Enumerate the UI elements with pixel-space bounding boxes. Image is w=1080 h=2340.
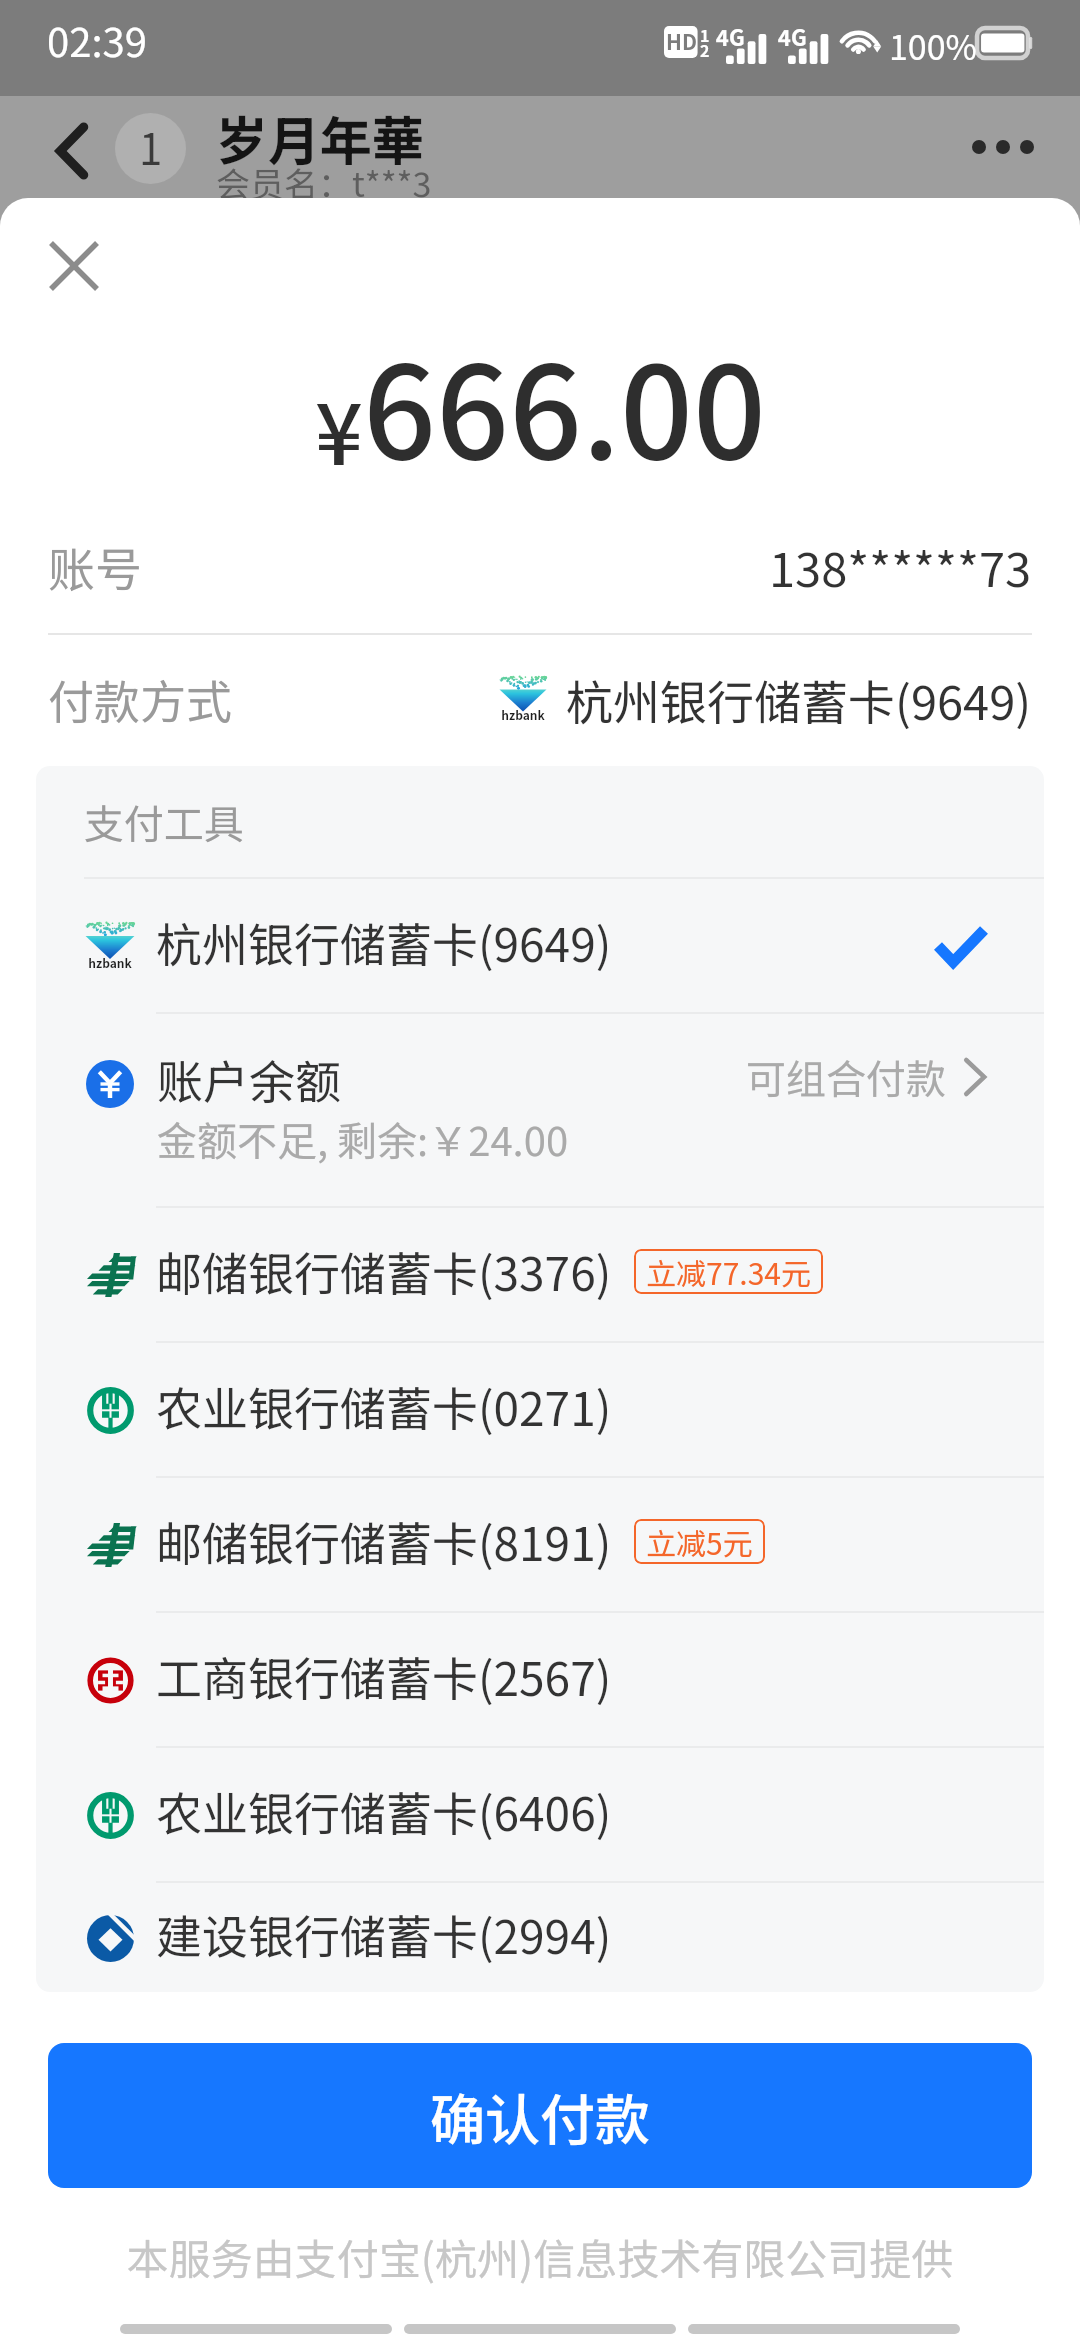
button[interactable]: Navigation 2 [688, 2324, 960, 2334]
staticText: 邮储银行储蓄卡(8191) [156, 1508, 612, 1575]
staticText: HD [666, 26, 697, 56]
staticText: 会员名：t***3 [216, 158, 432, 207]
staticText: ¥ [315, 368, 363, 490]
staticText: 金额不足, 剩余:￥24.00 [157, 1110, 569, 1168]
staticText: 立减5元 [646, 1520, 753, 1563]
staticText: 付款方式 [48, 666, 232, 733]
staticText: 杭州银行储蓄卡(9649) [156, 909, 612, 976]
staticText: 建设银行储蓄卡(2994) [156, 1901, 612, 1968]
button[interactable]: Close [16, 208, 132, 324]
button[interactable]: Navigation 1 [404, 2324, 676, 2334]
button[interactable]: 农业银行储蓄卡(6406) [84, 1748, 984, 1881]
button[interactable]: 付款方式 [48, 635, 1032, 763]
staticText: 4G [716, 20, 745, 52]
button[interactable]: 确认付款 [48, 2043, 1032, 2188]
staticText: hzbank [84, 954, 136, 971]
button[interactable]: More options [972, 119, 1034, 175]
staticText: 1 [139, 116, 163, 177]
button[interactable]: 农业银行储蓄卡(0271) [84, 1343, 984, 1476]
staticText: 1 [700, 23, 710, 46]
button[interactable]: Navigation 0 [120, 2324, 392, 2334]
staticText: 支付工具 [84, 793, 244, 851]
button[interactable]: 工商银行储蓄卡(2567) [84, 1613, 984, 1746]
staticText: 杭州银行储蓄卡(9649) [566, 665, 1032, 733]
staticText: 账户余额 [157, 1046, 341, 1113]
staticText: 农业银行储蓄卡(6406) [156, 1778, 612, 1845]
staticText: 账号 [48, 532, 142, 600]
staticText: 666.00 [363, 311, 766, 496]
button[interactable]: 邮储银行储蓄卡(3376) [84, 1208, 984, 1341]
staticText: 农业银行储蓄卡(0271) [156, 1373, 612, 1440]
staticText: 岁月年華 [216, 100, 425, 175]
staticText: 确认付款 [430, 2076, 651, 2156]
staticText: 邮储银行储蓄卡(3376) [156, 1238, 612, 1305]
staticText: 工商银行储蓄卡(2567) [156, 1643, 612, 1710]
staticText: hzbank [498, 706, 548, 723]
staticText: 立减77.34元 [646, 1250, 811, 1293]
staticText: 可组合付款 [746, 1048, 946, 1106]
button[interactable]: 邮储银行储蓄卡(8191) [84, 1478, 984, 1611]
staticText: 本服务由支付宝(杭州)信息技术有限公司提供 [0, 2226, 1080, 2287]
staticText: 4G [778, 20, 807, 52]
button[interactable]: 建设银行储蓄卡(2994) [84, 1883, 984, 1992]
staticText: 138******73 [769, 532, 1032, 600]
button[interactable]: hzbank [84, 879, 984, 1012]
staticText: 2 [700, 38, 710, 61]
staticText: 02:39 [47, 11, 147, 69]
staticText: 100% [889, 21, 977, 70]
button[interactable]: 账户余额 [36, 1014, 1044, 1206]
